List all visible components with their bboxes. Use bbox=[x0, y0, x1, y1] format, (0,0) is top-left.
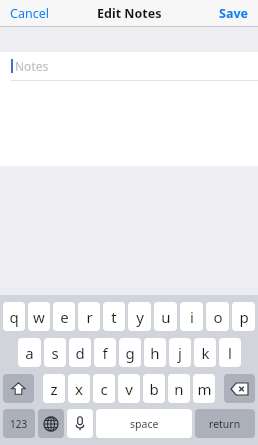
staticText: m bbox=[197, 379, 212, 399]
staticText: u bbox=[161, 307, 171, 327]
staticText: v bbox=[125, 379, 133, 399]
button[interactable]: i bbox=[180, 302, 203, 331]
staticText: n bbox=[174, 379, 184, 399]
button[interactable]: x bbox=[68, 374, 90, 403]
staticText: Cancel bbox=[10, 5, 49, 22]
button[interactable]: r bbox=[78, 302, 100, 331]
staticText: y bbox=[136, 307, 144, 327]
staticText: return bbox=[209, 417, 241, 431]
staticText: t bbox=[111, 307, 117, 327]
staticText: d bbox=[75, 343, 85, 363]
staticText: h bbox=[150, 343, 160, 363]
button[interactable]: g bbox=[119, 338, 141, 367]
button[interactable]: o bbox=[206, 302, 229, 331]
button[interactable]: u bbox=[154, 302, 177, 331]
button[interactable]: z bbox=[43, 374, 65, 403]
button[interactable]: v bbox=[118, 374, 140, 403]
staticText: b bbox=[149, 379, 159, 399]
button[interactable]: Backspace bbox=[224, 374, 255, 403]
staticText: z bbox=[50, 379, 58, 399]
button[interactable]: d bbox=[69, 338, 91, 367]
staticText: r bbox=[86, 307, 93, 327]
staticText: 123 bbox=[10, 417, 28, 431]
button[interactable]: Dictation bbox=[67, 409, 93, 438]
staticText: l bbox=[228, 343, 232, 363]
button[interactable]: q bbox=[3, 302, 25, 331]
button[interactable]: m bbox=[193, 374, 215, 403]
button[interactable]: w bbox=[28, 302, 50, 331]
button[interactable]: a bbox=[18, 338, 41, 367]
staticText: i bbox=[190, 307, 194, 327]
staticText: k bbox=[201, 343, 210, 363]
staticText: g bbox=[125, 343, 135, 363]
button[interactable]: b bbox=[143, 374, 165, 403]
staticText: Notes bbox=[15, 58, 49, 74]
staticText: w bbox=[33, 307, 45, 327]
staticText: q bbox=[9, 307, 19, 327]
button[interactable]: Cancel bbox=[0, 0, 59, 27]
staticText: x bbox=[75, 379, 83, 399]
button[interactable]: space bbox=[96, 409, 192, 438]
button[interactable]: l bbox=[219, 338, 241, 367]
staticText: Edit Notes bbox=[97, 5, 162, 22]
button[interactable]: s bbox=[44, 338, 66, 367]
staticText: Save bbox=[219, 5, 248, 22]
button[interactable]: h bbox=[144, 338, 166, 367]
staticText: j bbox=[178, 343, 182, 363]
staticText: s bbox=[51, 343, 59, 363]
staticText: o bbox=[213, 307, 223, 327]
button[interactable]: Change keyboard bbox=[38, 409, 64, 438]
button[interactable]: Shift bbox=[3, 374, 34, 403]
button[interactable]: y bbox=[128, 302, 151, 331]
button[interactable]: p bbox=[232, 302, 255, 331]
staticText: p bbox=[239, 307, 249, 327]
staticText: a bbox=[25, 343, 34, 363]
button[interactable]: Save bbox=[209, 0, 258, 27]
button[interactable]: Notes bbox=[0, 52, 258, 166]
button[interactable]: j bbox=[169, 338, 191, 367]
staticText: e bbox=[60, 307, 69, 327]
staticText: space bbox=[130, 417, 159, 431]
button[interactable]: n bbox=[168, 374, 190, 403]
button[interactable]: k bbox=[194, 338, 216, 367]
button[interactable]: c bbox=[93, 374, 115, 403]
staticText: c bbox=[100, 379, 108, 399]
button[interactable]: 123 bbox=[3, 409, 35, 438]
staticText: f bbox=[102, 343, 108, 363]
button[interactable]: return bbox=[195, 409, 255, 438]
button[interactable]: t bbox=[103, 302, 125, 331]
button[interactable]: e bbox=[53, 302, 75, 331]
button[interactable]: f bbox=[94, 338, 116, 367]
